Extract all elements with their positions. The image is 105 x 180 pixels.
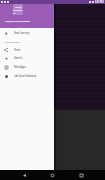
button[interactable]: Recent apps [77, 171, 86, 180]
staticText: DATABASE [1, 48, 13, 52]
button[interactable]: C LANGUAGE [0, 14, 105, 21]
staticText: 5:15 PM [95, 0, 104, 4]
button[interactable]: Rate Us [0, 54, 54, 62]
button[interactable]: MS OFFICE [0, 94, 105, 101]
staticText: More Apps [14, 65, 26, 69]
button[interactable]: SOFTWARE ENG [0, 78, 105, 85]
staticText: NETWORKING [1, 56, 18, 60]
button[interactable]: SYSTEM ANALYSIS [0, 30, 105, 37]
staticText: Computer [13, 8, 23, 14]
button[interactable]: Share [0, 46, 54, 54]
button[interactable]: NETWORKING [0, 54, 105, 61]
button[interactable]: HARDWARE [0, 102, 105, 109]
staticText: MCQs [15, 5, 22, 8]
button[interactable]: DATA STRUCTURE [0, 86, 105, 93]
staticText: Like Us on Facebook [14, 74, 36, 78]
staticText: SYSTEM ANALYSIS [1, 32, 22, 36]
button[interactable]: C++ [0, 38, 105, 45]
button[interactable]: COMPUTER NETWORK [0, 62, 105, 69]
button[interactable]: More Apps [0, 63, 54, 71]
button[interactable]: JAVASCRIPT [0, 22, 105, 29]
staticText: COMPUTER NETWORK [1, 64, 27, 68]
staticText: OPERATING SYSTEM [1, 72, 24, 76]
button[interactable]: DATABASE [0, 46, 105, 53]
button[interactable]: Start Learning [0, 29, 54, 37]
staticText: Share [14, 48, 21, 52]
staticText: Start Learning [14, 31, 30, 35]
button[interactable]: Back [20, 171, 29, 180]
staticText: C++ [1, 40, 6, 44]
button[interactable]: OPERATING SYSTEM [0, 70, 105, 77]
staticText: Communicate [5, 40, 20, 43]
button[interactable]: Like Us on Facebook [0, 72, 54, 80]
staticText: Rate Us [14, 56, 23, 60]
staticText: MCQs Computer Science [5, 19, 30, 22]
button[interactable]: Home [48, 171, 57, 180]
